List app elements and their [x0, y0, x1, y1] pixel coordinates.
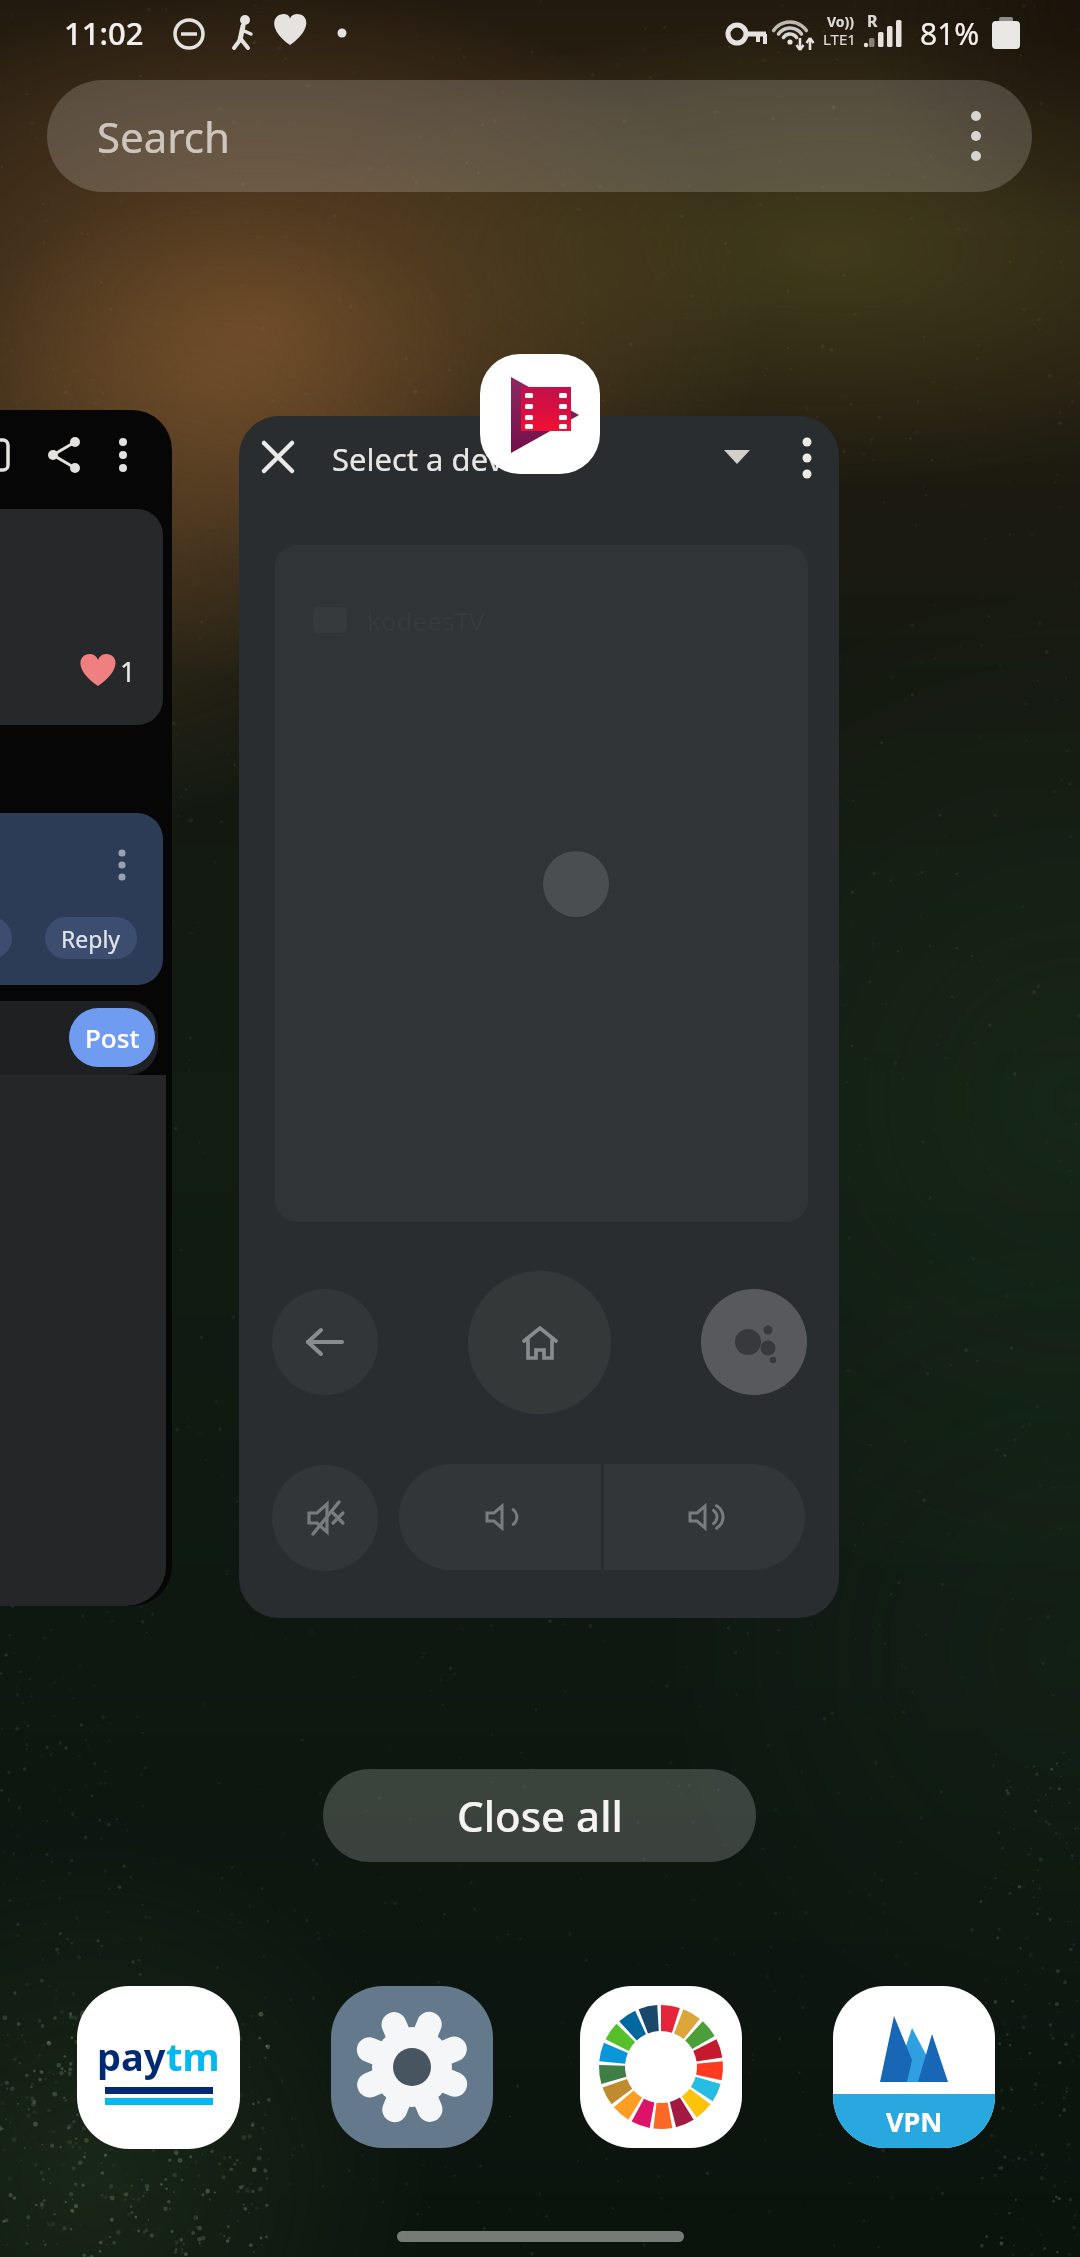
button[interactable]: [701, 1289, 807, 1395]
button[interactable]: Search: [47, 80, 1032, 192]
staticText: VPN: [886, 2103, 943, 2140]
button[interactable]: [480, 354, 600, 474]
staticText: Vo)): [827, 12, 855, 31]
button[interactable]: Close all: [323, 1769, 756, 1862]
button[interactable]: [604, 1464, 805, 1570]
button[interactable]: pay: [77, 1986, 240, 2149]
button[interactable]: [331, 1986, 493, 2148]
button[interactable]: [272, 1289, 378, 1395]
button[interactable]: [399, 1464, 601, 1570]
staticText: 1: [120, 653, 136, 690]
staticText: Reply: [61, 923, 121, 954]
staticText: LTE1: [823, 29, 856, 49]
button[interactable]: VPN: [833, 1986, 995, 2148]
staticText: Post: [85, 1020, 140, 1055]
button[interactable]: Select a device: [239, 416, 839, 1618]
button[interactable]: [272, 1465, 378, 1571]
button[interactable]: 1: [0, 410, 172, 1606]
button[interactable]: [468, 1271, 611, 1414]
staticText: 81%: [920, 13, 980, 54]
staticText: Select a device: [332, 438, 544, 480]
staticText: tm: [166, 2030, 220, 2082]
staticText: Search: [97, 108, 230, 165]
button[interactable]: [580, 1986, 742, 2148]
staticText: Close all: [457, 1787, 623, 1844]
button[interactable]: Reply: [45, 917, 137, 959]
button[interactable]: Post: [69, 1008, 155, 1067]
staticText: 11:02: [64, 12, 144, 54]
staticText: pay: [97, 2030, 166, 2082]
staticText: R: [867, 10, 878, 32]
